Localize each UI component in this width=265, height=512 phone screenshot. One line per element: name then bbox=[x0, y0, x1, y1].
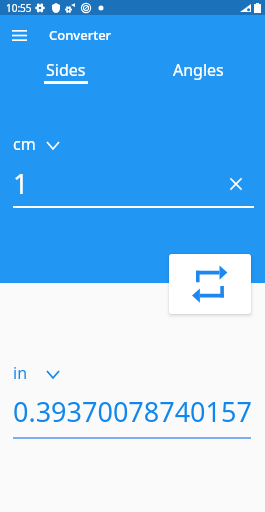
button[interactable]: Sides bbox=[0, 59, 132, 91]
button[interactable]: in bbox=[13, 362, 73, 384]
button[interactable]: Angles bbox=[132, 59, 265, 91]
staticText: 0.39370078740157 bbox=[13, 393, 252, 430]
staticText: Angles bbox=[173, 59, 224, 81]
button[interactable]: Clear bbox=[226, 174, 246, 194]
staticText: cm bbox=[13, 133, 36, 155]
staticText: 1 bbox=[13, 165, 29, 202]
button[interactable]: Swap units bbox=[169, 254, 251, 314]
staticText: 10:55 bbox=[6, 1, 32, 15]
button[interactable]: Menu bbox=[3, 19, 35, 51]
button[interactable]: cm bbox=[13, 133, 73, 155]
staticText: Sides bbox=[46, 59, 86, 81]
staticText: Converter bbox=[49, 26, 112, 44]
staticText: in bbox=[13, 362, 28, 384]
